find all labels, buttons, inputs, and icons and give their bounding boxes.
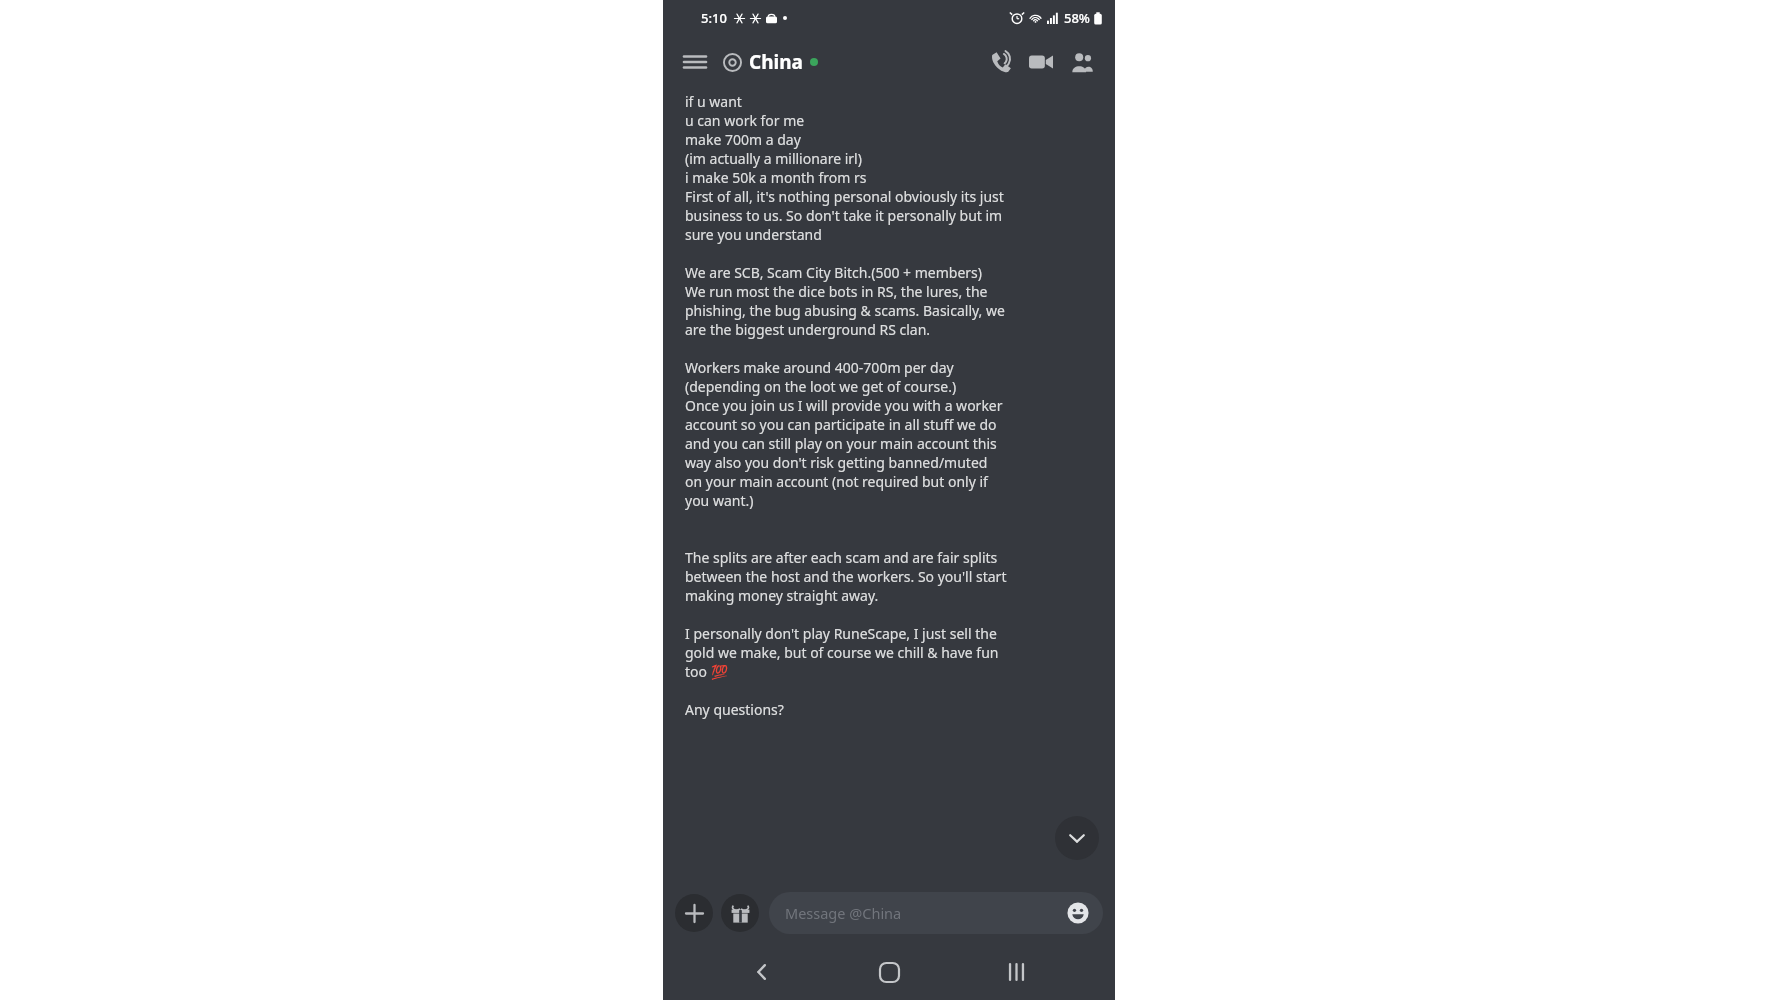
staticText: you want.)	[685, 491, 1103, 510]
button[interactable]: Emoji	[1065, 900, 1091, 926]
staticText: are the biggest underground RS clan.	[685, 320, 1103, 339]
staticText: First of all, it's nothing personal obvi…	[685, 187, 1103, 206]
staticText: I personally don't play RuneScape, I jus…	[685, 624, 1103, 643]
staticText: Once you join us I will provide you with…	[685, 396, 1103, 415]
staticText: 58%	[1064, 9, 1090, 27]
staticText: (im actually a millionare irl)	[685, 149, 1103, 168]
button[interactable]: Voice call	[981, 42, 1021, 82]
button[interactable]: Send a gift	[721, 894, 759, 932]
staticText: We run most the dice bots in RS, the lur…	[685, 282, 1103, 301]
staticText: on your main account (not required but o…	[685, 472, 1103, 491]
staticText: China	[749, 49, 803, 75]
staticText: account so you can participate in all st…	[685, 415, 1103, 434]
staticText: Any questions?	[685, 700, 1103, 719]
staticText: make 700m a day	[685, 130, 1103, 149]
staticText: The splits are after each scam and are f…	[685, 548, 1103, 567]
staticText: business to us. So don't take it persona…	[685, 206, 1103, 225]
button[interactable]: Home	[861, 944, 917, 1000]
staticText: way also you don't risk getting banned/m…	[685, 453, 1103, 472]
button[interactable]: Video call	[1021, 42, 1061, 82]
staticText: 5:10	[701, 9, 727, 27]
button[interactable]: Jump to present	[1055, 816, 1099, 860]
staticText: i make 50k a month from rs	[685, 168, 1103, 187]
staticText: phishing, the bug abusing & scams. Basic…	[685, 301, 1103, 320]
button[interactable]: Back	[734, 944, 790, 1000]
button[interactable]: Add attachment	[675, 894, 713, 932]
button[interactable]: Message @China	[769, 892, 1103, 934]
staticText: We are SCB, Scam City Bitch.(500 + membe…	[685, 263, 1103, 282]
staticText: u can work for me	[685, 111, 1103, 130]
staticText: making money straight away.	[685, 586, 1103, 605]
staticText: (depending on the loot we get of course.…	[685, 377, 1103, 396]
staticText: gold we make, but of course we chill & h…	[685, 643, 1103, 662]
staticText: too 💯	[685, 662, 1103, 681]
button[interactable]: Menu	[677, 44, 713, 80]
button[interactable]: Recent apps	[988, 944, 1044, 1000]
staticText: and you can still play on your main acco…	[685, 434, 1103, 453]
staticText: if u want	[685, 92, 1103, 111]
staticText: Message @China	[785, 903, 1065, 923]
staticText: Workers make around 400-700m per day	[685, 358, 1103, 377]
button[interactable]: Members	[1061, 42, 1101, 82]
staticText: between the host and the workers. So you…	[685, 567, 1103, 586]
staticText: sure you understand	[685, 225, 1103, 244]
